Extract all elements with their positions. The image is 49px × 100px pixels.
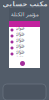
staticText: عنوان <box>15 32 24 36</box>
staticText: مكتب حسابي <box>2 0 47 8</box>
staticText: عنوان <box>15 26 24 30</box>
staticText: عنوان <box>15 50 24 54</box>
staticText: عنوان <box>15 44 24 48</box>
staticText: تفاصيل <box>15 55 23 58</box>
staticText: تفاصيل <box>15 43 23 46</box>
staticText: مؤتمر الكتلة <box>10 11 38 18</box>
staticText: عنوان <box>15 38 24 42</box>
staticText: تفاصيل <box>15 31 23 34</box>
staticText: تفاصيل <box>15 37 23 40</box>
staticText: تفاصيل <box>15 49 23 52</box>
